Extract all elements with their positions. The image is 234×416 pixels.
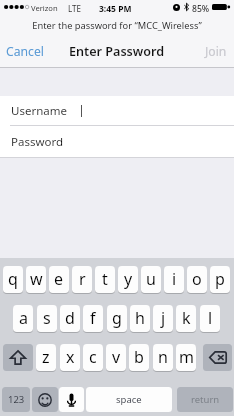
staticText: x [66,346,75,368]
staticText: f [90,307,96,329]
staticText: v [112,346,121,368]
button[interactable]: c [83,344,103,371]
staticText: r [79,268,86,290]
staticText: h [135,307,145,329]
button[interactable]: u [141,266,161,293]
button[interactable]: r [72,266,92,293]
staticText: 123 [8,393,25,406]
staticText: 3:45 PM [99,3,132,15]
button[interactable]: s [37,305,57,332]
staticText: t [102,268,108,290]
button[interactable]: x [60,344,80,371]
button[interactable]: p [210,266,230,293]
staticText: Join [205,43,227,60]
staticText: b [134,346,144,368]
staticText: u [146,268,156,290]
staticText: d [65,307,75,329]
button[interactable]: Cancel [6,34,44,69]
button[interactable]: Shift [3,344,33,371]
staticText: l [208,307,213,329]
button[interactable]: 123 [2,387,30,412]
button[interactable]: i [164,266,184,293]
staticText: w [30,268,43,290]
staticText: Enter the password for “MCC_Wireless” [32,19,202,32]
button[interactable]: v [106,344,126,371]
button[interactable]: Delete [203,344,232,371]
staticText: return [191,393,220,406]
staticText: m [179,346,194,368]
button[interactable]: Join [205,34,227,69]
button[interactable]: Dictation [59,387,84,412]
button[interactable]: z [36,344,56,371]
staticText: k [182,307,191,329]
staticText: e [54,268,64,290]
button[interactable]: d [60,305,80,332]
button[interactable]: b [129,344,149,371]
staticText: c [89,346,97,368]
button[interactable]: return [177,387,233,412]
staticText: s [43,307,51,329]
button[interactable]: t [95,266,115,293]
button[interactable]: g [107,305,127,332]
staticText: p [215,268,225,290]
button[interactable]: Password [0,125,234,159]
staticText: q [8,268,18,290]
button[interactable]: j [153,305,173,332]
staticText: n [158,346,168,368]
button[interactable]: h [130,305,150,332]
staticText: Verizon [31,3,58,13]
button[interactable]: e [49,266,69,293]
button[interactable]: q [3,266,23,293]
staticText: Password [11,134,64,150]
staticText: j [161,307,166,329]
button[interactable]: f [83,305,103,332]
staticText: LTE [68,3,81,14]
button[interactable]: Emoji keyboard [32,387,58,412]
button[interactable]: Username [0,96,234,125]
staticText: Username [11,103,67,119]
button[interactable]: a [13,305,33,332]
staticText: y [124,268,133,290]
button[interactable]: space [86,387,172,412]
staticText: Enter Password [69,43,165,60]
staticText: i [172,268,177,290]
button[interactable]: m [176,344,196,371]
staticText: a [19,307,28,329]
staticText: o [192,268,202,290]
staticText: z [42,346,50,368]
button[interactable]: o [187,266,207,293]
button[interactable]: y [118,266,138,293]
staticText: 85% [192,3,210,15]
staticText: space [116,393,142,406]
staticText: g [112,307,122,329]
button[interactable]: n [153,344,173,371]
staticText: Cancel [6,43,44,60]
button[interactable]: w [26,266,46,293]
button[interactable]: l [200,305,220,332]
button[interactable]: k [176,305,196,332]
